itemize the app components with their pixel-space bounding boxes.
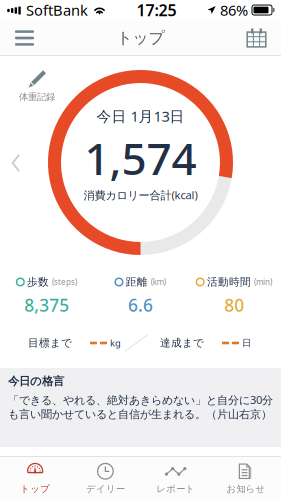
staticText: 今日の格言 [8, 374, 64, 388]
staticText: 達成まで [160, 336, 204, 349]
staticText: 目標まで [28, 336, 72, 349]
button[interactable]: レポート [140, 456, 211, 499]
staticText: レポート [156, 483, 195, 495]
staticText: 6.6 [128, 293, 153, 316]
staticText: 消費カロリー合計(kcal) [83, 187, 197, 203]
staticText: 距離 [126, 275, 148, 288]
staticText: kg [110, 337, 121, 349]
staticText: 体重記録 [19, 91, 55, 103]
button[interactable]: Calendar [237, 20, 276, 55]
staticText: 8,375 [24, 293, 69, 316]
button[interactable]: トップ [0, 456, 70, 499]
staticText: 歩数 [27, 275, 49, 288]
staticText: トップ [116, 28, 164, 48]
staticText: デイリー [86, 483, 125, 495]
staticText: 「できる、やれる、絶対あきらめない」と自分に30分も言い聞かせていると自信が生ま… [8, 392, 273, 421]
staticText: 活動時間 [207, 275, 251, 288]
staticText: 80 [224, 293, 244, 316]
staticText: 今日 1月13日 [96, 106, 184, 126]
staticText: トップ [20, 483, 50, 495]
staticText: (km) [151, 277, 166, 287]
button[interactable]: デイリー [70, 456, 140, 499]
staticText: 日 [242, 337, 251, 349]
staticText: 86% [220, 0, 248, 20]
button[interactable]: Previous day [4, 147, 28, 179]
staticText: 17:25 [136, 0, 176, 21]
button[interactable]: お知らせ [211, 456, 281, 499]
staticText: お知らせ [226, 483, 265, 495]
staticText: SoftBank [26, 0, 88, 20]
staticText: (steps) [52, 277, 77, 287]
staticText: (min) [254, 277, 272, 287]
staticText: 1,574 [84, 129, 196, 187]
button[interactable]: Menu [5, 20, 44, 55]
button[interactable]: 体重記録 [14, 67, 60, 105]
